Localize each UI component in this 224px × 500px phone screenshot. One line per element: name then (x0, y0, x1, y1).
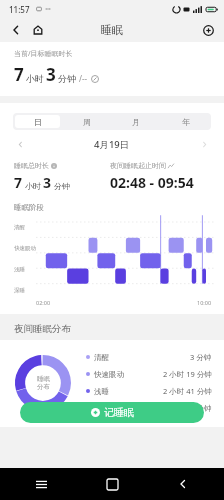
staticText: 深睡 (94, 404, 109, 413)
staticText: 4月19日 (94, 138, 130, 151)
staticText: 2 小时 19 分钟 (163, 369, 212, 379)
button[interactable]: Add (200, 22, 216, 38)
staticText: 浅睡 (14, 266, 25, 273)
staticText: 夜间睡眠分布 (14, 323, 71, 335)
button[interactable]: Back (172, 473, 194, 495)
button[interactable]: Edit goal (90, 74, 99, 83)
staticText: 02:00 (36, 299, 51, 306)
button[interactable]: 月 (113, 115, 159, 128)
staticText: 睡眠 (101, 23, 123, 37)
staticText: 小时 (25, 181, 41, 191)
staticText: 记睡眠 (104, 406, 134, 419)
staticText: 当前/目标睡眠时长 (14, 49, 73, 59)
staticText: 3 (43, 173, 52, 192)
staticText: 月 (132, 117, 140, 127)
staticText: 7 (14, 173, 23, 192)
button[interactable]: 日 (15, 115, 60, 128)
staticText: 清醒 (94, 353, 109, 362)
button[interactable]: 记睡眠 (20, 402, 204, 423)
staticText: 3 分钟 (190, 352, 212, 362)
staticText: 夜间睡眠起止时间 (110, 161, 166, 170)
staticText: 7 (14, 63, 24, 86)
button[interactable]: Back (8, 22, 24, 38)
button[interactable]: 周 (64, 115, 109, 128)
button[interactable]: Next day (198, 138, 210, 150)
staticText: 深睡 (14, 287, 25, 294)
button[interactable]: Home (101, 473, 123, 495)
staticText: 浅睡 (94, 387, 109, 396)
staticText: 11:57 (9, 4, 30, 15)
staticText: 分钟 (58, 73, 76, 84)
staticText: 2 小时 5 分钟 (167, 403, 212, 413)
button[interactable]: Recents (30, 473, 52, 495)
staticText: /-- (79, 73, 88, 84)
staticText: 睡眠阶段 (14, 203, 44, 212)
staticText: 10:00 (197, 299, 212, 306)
button[interactable]: 年 (163, 115, 209, 128)
staticText: 日 (34, 117, 42, 127)
staticText: 睡眠总时长 (14, 161, 49, 170)
staticText: 周 (83, 117, 91, 127)
button[interactable]: Previous day (14, 138, 26, 150)
staticText: 睡眠 (37, 375, 50, 383)
staticText: 年 (182, 117, 190, 127)
staticText: 清醒 (14, 224, 25, 231)
button[interactable]: Home (30, 22, 46, 38)
staticText: 2 小时 41 分钟 (163, 386, 212, 396)
staticText: 02:48 - 09:54 (110, 173, 194, 192)
staticText: 快速眼动 (94, 370, 124, 379)
staticText: 小时 (26, 73, 44, 84)
staticText: 3 (46, 63, 56, 86)
staticText: 分布 (37, 383, 50, 391)
staticText: 分钟 (54, 181, 70, 191)
staticText: 快速眼动 (14, 245, 36, 252)
